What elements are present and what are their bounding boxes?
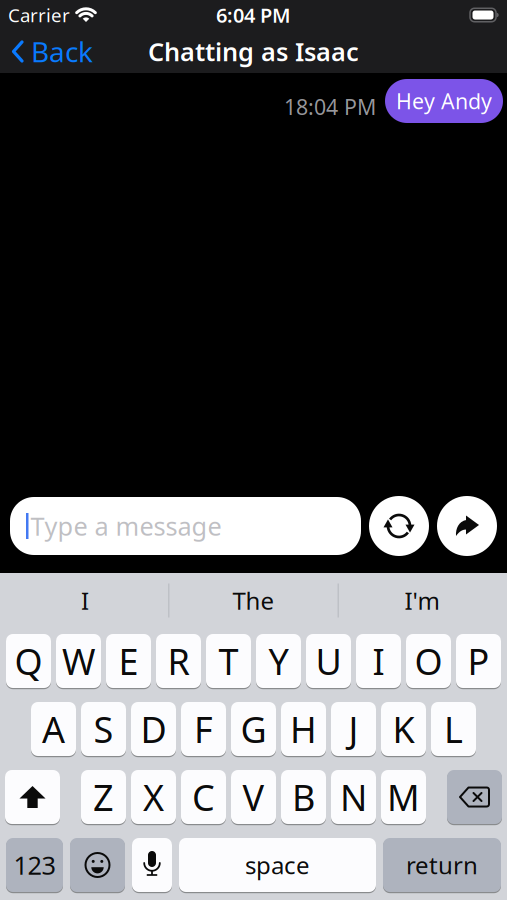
staticText: I: [372, 637, 384, 685]
staticText: T: [218, 637, 238, 685]
button[interactable]: T: [206, 634, 251, 688]
button[interactable]: C: [181, 770, 226, 824]
staticText: F: [194, 705, 213, 753]
button[interactable]: Type a message: [10, 497, 361, 555]
button[interactable]: space: [179, 838, 376, 892]
staticText: Hey Andy: [396, 87, 492, 115]
button[interactable]: B: [281, 770, 326, 824]
button[interactable]: 123: [6, 838, 63, 892]
staticText: space: [245, 849, 310, 881]
button[interactable]: F: [181, 702, 226, 756]
staticText: Type a message: [30, 509, 221, 543]
staticText: Back: [31, 33, 93, 70]
staticText: V: [242, 773, 264, 821]
staticText: G: [240, 705, 266, 753]
staticText: O: [414, 637, 442, 685]
button[interactable]: P: [456, 634, 501, 688]
staticText: Q: [14, 637, 42, 685]
staticText: Y: [268, 637, 288, 685]
button[interactable]: D: [131, 702, 176, 756]
staticText: I'm: [404, 585, 439, 616]
staticText: S: [93, 705, 113, 753]
button[interactable]: Regenerate: [369, 496, 429, 556]
staticText: E: [118, 637, 138, 685]
button[interactable]: Share: [437, 496, 497, 556]
staticText: H: [290, 705, 317, 753]
button[interactable]: O: [406, 634, 451, 688]
staticText: P: [467, 637, 489, 685]
staticText: 6:04 PM: [216, 2, 291, 28]
button[interactable]: Back: [0, 33, 93, 70]
button[interactable]: I: [1, 585, 169, 616]
button[interactable]: S: [81, 702, 126, 756]
button[interactable]: I: [356, 634, 401, 688]
button[interactable]: Emoji: [70, 838, 125, 892]
staticText: Z: [93, 773, 114, 821]
staticText: J: [348, 705, 358, 753]
staticText: K: [392, 705, 414, 753]
staticText: 123: [13, 848, 55, 882]
button[interactable]: N: [331, 770, 376, 824]
button[interactable]: X: [131, 770, 176, 824]
staticText: M: [387, 773, 420, 821]
button[interactable]: Z: [81, 770, 126, 824]
staticText: X: [143, 773, 164, 821]
button[interactable]: J: [331, 702, 376, 756]
button[interactable]: A: [31, 702, 76, 756]
staticText: Carrier: [8, 3, 70, 27]
staticText: 18:04 PM: [284, 93, 376, 121]
staticText: B: [292, 773, 315, 821]
staticText: R: [167, 637, 189, 685]
staticText: The: [232, 585, 274, 616]
button[interactable]: Q: [6, 634, 51, 688]
staticText: D: [140, 705, 166, 753]
button[interactable]: The: [169, 585, 338, 616]
button[interactable]: U: [306, 634, 351, 688]
staticText: N: [340, 773, 367, 821]
button[interactable]: E: [106, 634, 151, 688]
button[interactable]: Y: [256, 634, 301, 688]
button[interactable]: Shift: [5, 770, 60, 824]
staticText: I: [81, 585, 89, 616]
button[interactable]: Delete: [447, 770, 502, 824]
staticText: C: [192, 773, 215, 821]
staticText: L: [444, 705, 463, 753]
button[interactable]: H: [281, 702, 326, 756]
button[interactable]: G: [231, 702, 276, 756]
staticText: W: [62, 637, 95, 685]
button[interactable]: I'm: [338, 585, 506, 616]
staticText: A: [42, 705, 65, 753]
button[interactable]: K: [381, 702, 426, 756]
button[interactable]: return: [383, 838, 501, 892]
staticText: Chatting as Isaac: [148, 35, 359, 68]
staticText: U: [315, 637, 341, 685]
button[interactable]: M: [381, 770, 426, 824]
staticText: return: [406, 849, 478, 881]
button[interactable]: W: [56, 634, 101, 688]
button[interactable]: V: [231, 770, 276, 824]
button[interactable]: L: [431, 702, 476, 756]
button[interactable]: Dictate: [132, 838, 172, 892]
button[interactable]: R: [156, 634, 201, 688]
